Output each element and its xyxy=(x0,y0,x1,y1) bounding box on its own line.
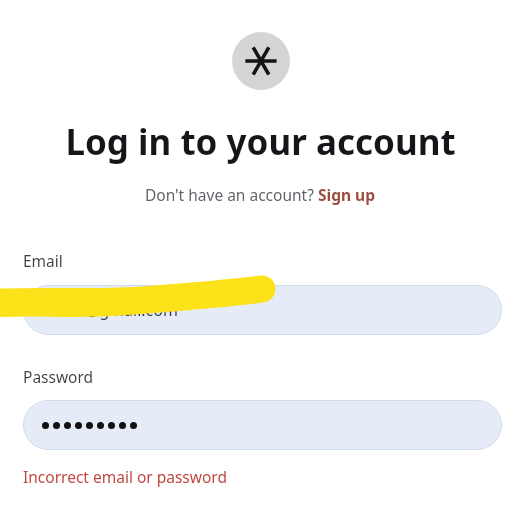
staticText: Email xyxy=(23,250,63,271)
staticText: Sign up xyxy=(318,184,375,205)
staticText: Incorrect email or password xyxy=(23,466,227,487)
staticText: Log in to your account xyxy=(65,118,456,166)
button[interactable]: Sign up xyxy=(318,184,375,205)
staticText: Password xyxy=(23,366,94,387)
staticText: name@gmail.com xyxy=(42,299,178,321)
button[interactable]: Password input xyxy=(23,400,502,450)
button[interactable]: Email input xyxy=(23,285,502,335)
staticText: Don't have an account? xyxy=(145,184,318,205)
other: App logo xyxy=(232,32,290,90)
